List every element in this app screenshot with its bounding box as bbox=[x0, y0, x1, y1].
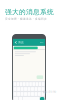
button[interactable]: Key bbox=[23, 82, 26, 86]
button[interactable]: Key bbox=[32, 82, 35, 86]
staticText: app.demo bbox=[42, 90, 56, 93]
button[interactable]: Back bbox=[15, 41, 17, 44]
button[interactable]: Key bbox=[41, 92, 44, 96]
button[interactable]: Key bbox=[34, 87, 37, 91]
button[interactable]: Key bbox=[41, 87, 44, 91]
button[interactable]: More options bbox=[40, 41, 43, 44]
button[interactable]: Key bbox=[21, 92, 23, 96]
button[interactable]: Send bbox=[40, 97, 44, 100]
staticText: 安全加密 · 极速送达 · 多端同步 bbox=[5, 17, 47, 20]
button[interactable]: Key bbox=[21, 87, 23, 91]
staticText: 消息 bbox=[18, 41, 24, 44]
staticText: 强大的消息系统 bbox=[5, 8, 54, 16]
button[interactable]: Key bbox=[34, 92, 37, 96]
